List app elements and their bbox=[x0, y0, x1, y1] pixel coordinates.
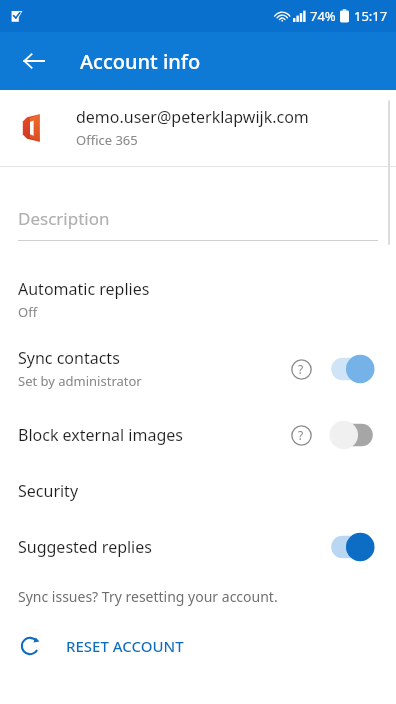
button[interactable]: Toggle bbox=[326, 530, 378, 564]
staticText: Block external images bbox=[18, 424, 183, 446]
staticText: 74% bbox=[310, 7, 336, 25]
staticText: 15:17 bbox=[354, 7, 388, 25]
button[interactable]: Suggested replies bbox=[0, 530, 396, 564]
staticText: ? bbox=[298, 427, 304, 443]
button[interactable]: Block external images bbox=[0, 418, 396, 452]
staticText: Sync contacts bbox=[18, 347, 120, 369]
button[interactable]: demo.user@peterklapwijk.com bbox=[0, 90, 396, 165]
staticText: Office 365 bbox=[76, 131, 138, 149]
staticText: RESET ACCOUNT bbox=[66, 636, 184, 656]
staticText: Automatic replies bbox=[18, 278, 150, 300]
button[interactable]: Sync contacts bbox=[0, 347, 396, 390]
button[interactable]: Help bbox=[284, 418, 318, 452]
staticText: Suggested replies bbox=[18, 536, 152, 558]
staticText: Set by administrator bbox=[18, 372, 142, 390]
staticText: demo.user@peterklapwijk.com bbox=[76, 106, 309, 128]
staticText: Security bbox=[18, 480, 79, 502]
staticText: Off bbox=[18, 303, 38, 321]
button[interactable]: Help bbox=[284, 352, 318, 386]
button[interactable]: Toggle bbox=[326, 352, 378, 386]
button[interactable]: Security bbox=[0, 480, 396, 502]
staticText: ? bbox=[298, 361, 304, 377]
button[interactable]: RESET ACCOUNT bbox=[0, 634, 396, 658]
staticText: Description bbox=[18, 207, 110, 230]
button[interactable]: Automatic replies bbox=[0, 278, 396, 321]
button[interactable]: Back bbox=[10, 37, 58, 85]
button[interactable]: Description bbox=[0, 167, 396, 241]
button[interactable]: Toggle bbox=[326, 418, 378, 452]
staticText: Account info bbox=[80, 48, 201, 75]
staticText: Sync issues? Try resetting your account. bbox=[18, 587, 278, 606]
